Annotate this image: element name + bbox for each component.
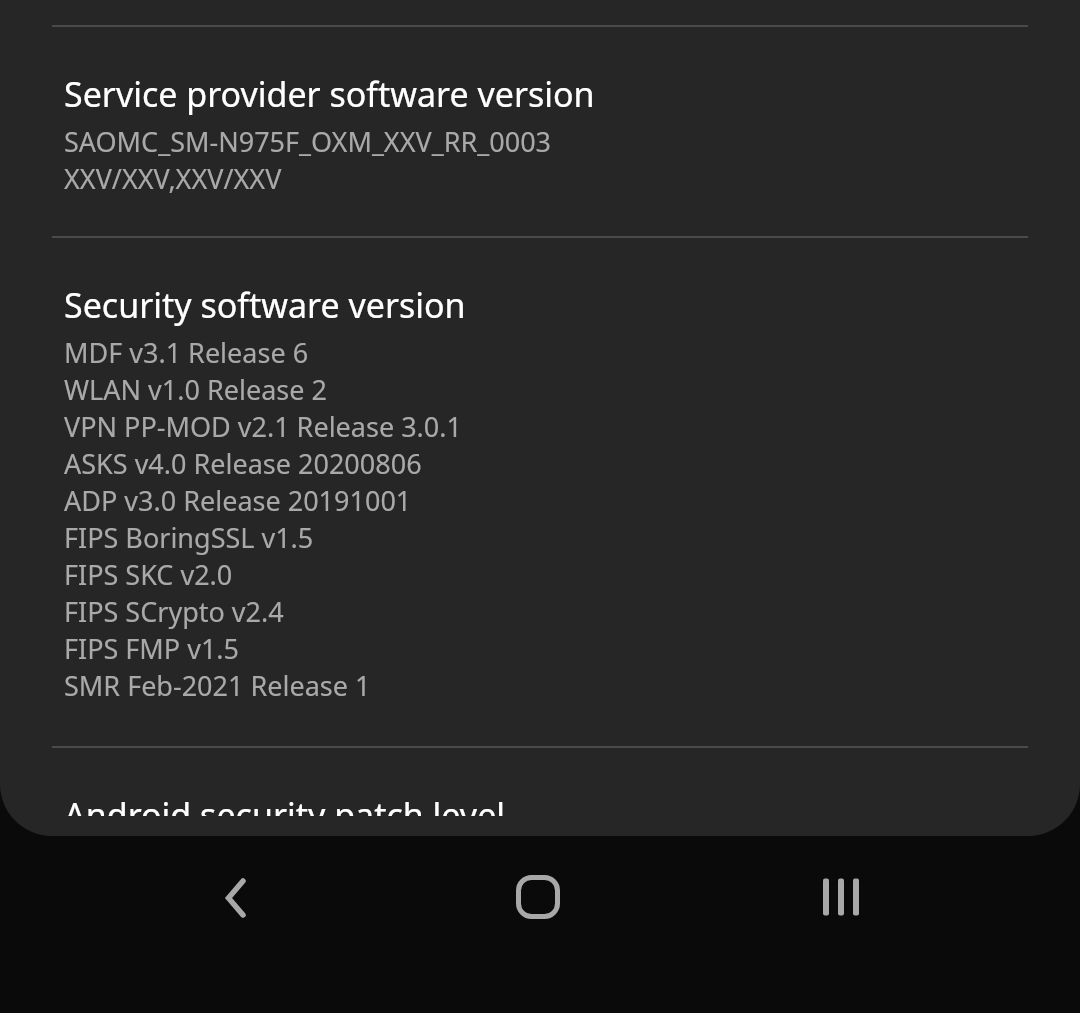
staticText: ASKS v4.0 Release 20200806	[64, 445, 422, 482]
button[interactable]: Security software version	[0, 238, 1080, 724]
button[interactable]: Recent apps	[801, 857, 881, 937]
staticText: Android security patch level	[64, 792, 506, 816]
staticText: XXV/XXV,XXV/XXV	[64, 160, 282, 197]
staticText: Service provider software version	[64, 71, 595, 117]
staticText: FIPS FMP v1.5	[64, 630, 240, 667]
staticText: FIPS SKC v2.0	[64, 556, 233, 593]
staticText: MDF v3.1 Release 6	[64, 334, 309, 371]
staticText: VPN PP-MOD v2.1 Release 3.0.1	[64, 408, 462, 445]
staticText: SMR Feb-2021 Release 1	[64, 667, 371, 704]
staticText: FIPS SCrypto v2.4	[64, 593, 284, 630]
button[interactable]: Android security patch level	[0, 748, 1080, 836]
staticText: ADP v3.0 Release 20191001	[64, 482, 412, 519]
button[interactable]: Service provider software version	[0, 27, 1080, 217]
button[interactable]: Home	[498, 857, 578, 937]
staticText: Security software version	[64, 282, 466, 328]
staticText: WLAN v1.0 Release 2	[64, 371, 327, 408]
staticText: FIPS BoringSSL v1.5	[64, 519, 314, 556]
button[interactable]: Back	[197, 858, 277, 938]
staticText: SAOMC_SM-N975F_OXM_XXV_RR_0003	[64, 123, 552, 160]
